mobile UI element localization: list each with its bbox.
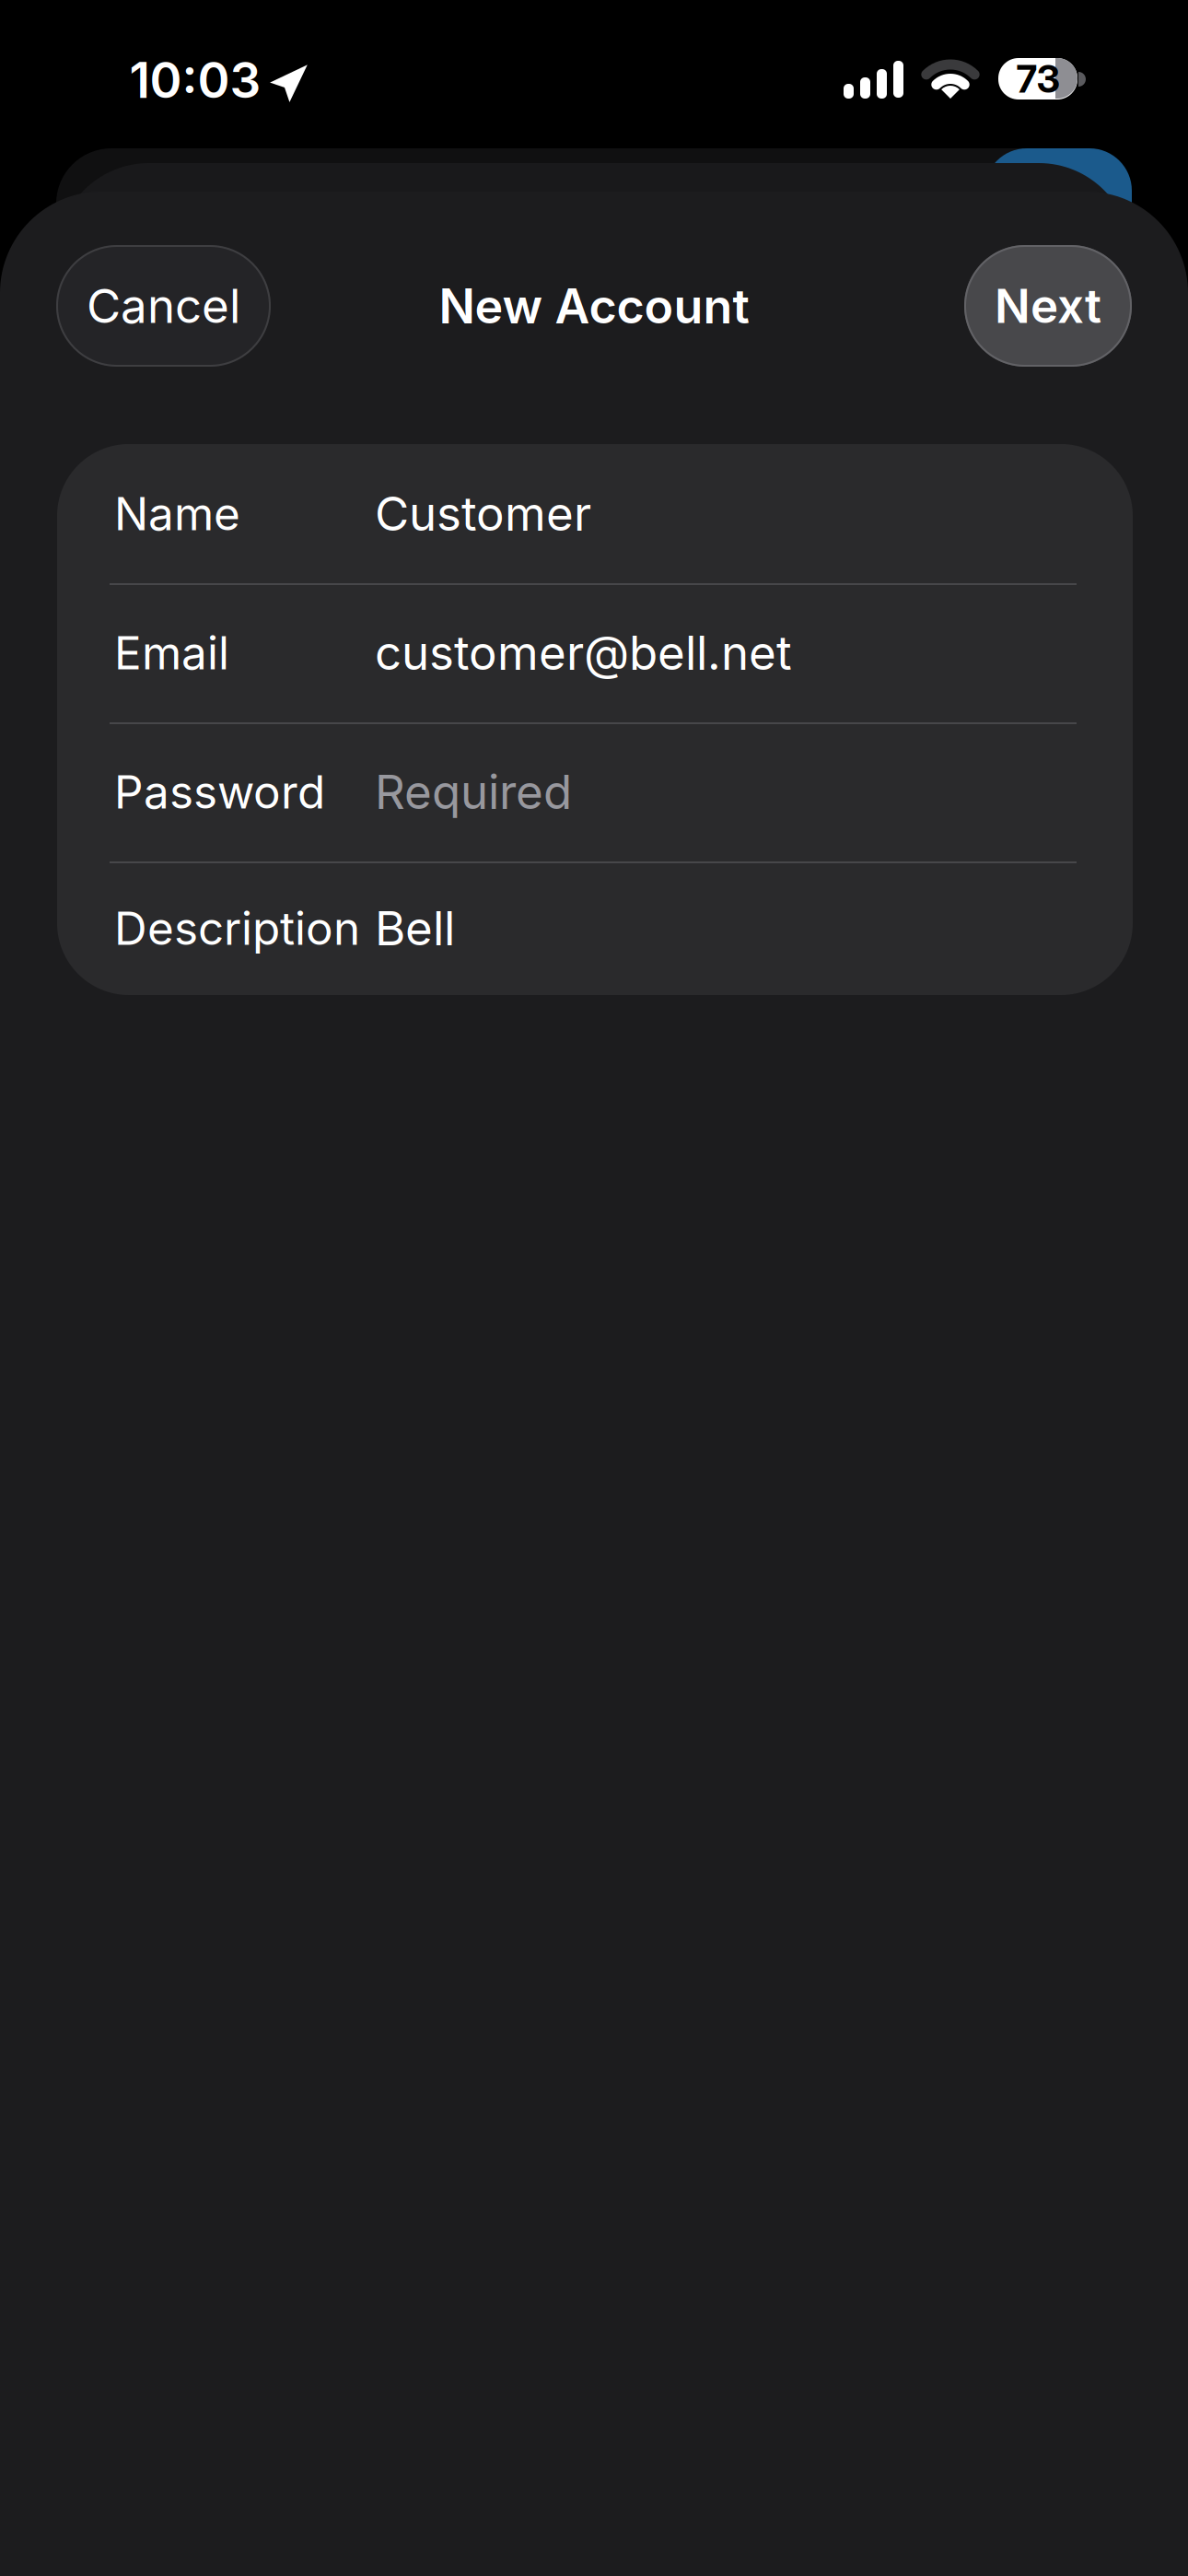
staticText: Name bbox=[114, 486, 240, 541]
staticText: Cancel bbox=[87, 277, 240, 334]
staticText: Description bbox=[114, 901, 360, 956]
staticText: customer@bell.net bbox=[375, 624, 792, 681]
staticText: Password bbox=[114, 764, 325, 819]
staticText: Email bbox=[114, 625, 229, 680]
staticText: Required bbox=[375, 763, 572, 820]
button[interactable]: Next bbox=[964, 245, 1132, 367]
button[interactable]: Description bbox=[57, 861, 1133, 995]
staticText: Customer bbox=[375, 485, 591, 542]
staticText: Bell bbox=[375, 900, 455, 957]
button[interactable]: Name bbox=[57, 444, 1133, 583]
button[interactable]: Cancel bbox=[56, 245, 271, 367]
staticText: 73 bbox=[1016, 56, 1060, 102]
button[interactable]: Email bbox=[57, 583, 1133, 722]
button[interactable]: Password bbox=[57, 722, 1133, 861]
staticText: Next bbox=[995, 277, 1101, 334]
staticText: 10:03 bbox=[129, 51, 261, 110]
staticText: New Account bbox=[439, 277, 749, 335]
